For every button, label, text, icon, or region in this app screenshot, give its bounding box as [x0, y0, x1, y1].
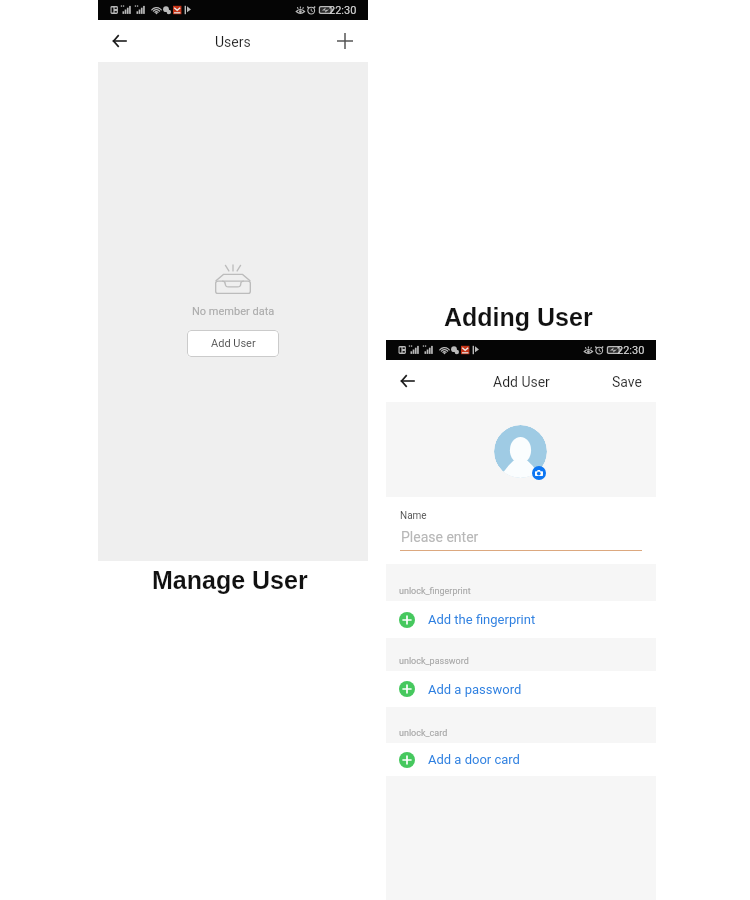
staticText: No member data	[192, 305, 275, 318]
button[interactable]: Add User	[187, 330, 279, 357]
staticText: Add a password	[428, 682, 522, 697]
staticText: Add User	[493, 374, 550, 390]
staticText: Adding User	[444, 303, 593, 331]
staticText: Users	[215, 34, 251, 50]
button[interactable]: Add a door card	[386, 743, 656, 776]
staticText: 22:30	[329, 4, 357, 17]
staticText: unlock_fingerprint	[399, 586, 471, 597]
button[interactable]: Add user	[330, 26, 360, 56]
button[interactable]: Profile photo	[494, 425, 547, 478]
staticText: Manage User	[152, 566, 308, 594]
button[interactable]: Add the fingerprint	[386, 601, 656, 638]
staticText: Add the fingerprint	[428, 612, 536, 627]
staticText: unlock_card	[399, 728, 448, 739]
staticText: unlock_password	[399, 656, 469, 667]
staticText: Save	[612, 374, 642, 390]
button[interactable]: Back	[392, 366, 422, 396]
button[interactable]: Back	[104, 26, 134, 56]
staticText: Name	[400, 510, 427, 522]
staticText: Add User	[211, 337, 256, 350]
button[interactable]: Save	[598, 360, 656, 402]
staticText: Please enter	[401, 529, 479, 545]
button[interactable]: Add a password	[386, 671, 656, 707]
staticText: 22:30	[617, 344, 645, 357]
button[interactable]: Name	[386, 497, 656, 564]
staticText: Add a door card	[428, 752, 520, 767]
button[interactable]: Change profile photo	[532, 466, 546, 480]
